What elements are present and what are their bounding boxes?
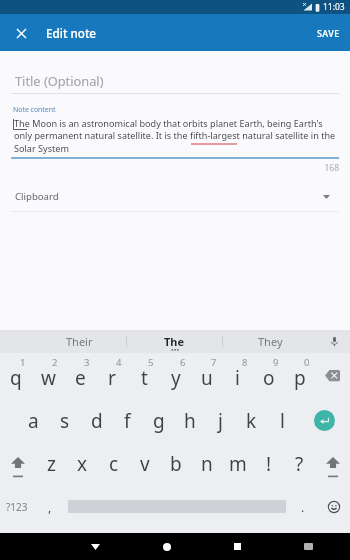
button[interactable]: Enter xyxy=(298,399,350,442)
staticText: Clipboard xyxy=(15,190,59,203)
button[interactable]: w xyxy=(32,357,64,399)
staticText: i xyxy=(235,365,240,391)
staticText: Edit note xyxy=(46,25,97,41)
staticText: Their xyxy=(66,334,93,349)
staticText: 5 xyxy=(148,356,154,369)
staticText: 1 xyxy=(20,356,26,369)
staticText: t xyxy=(141,365,148,391)
staticText: v xyxy=(140,451,150,477)
button[interactable]: Home xyxy=(131,533,202,560)
staticText: f xyxy=(124,408,131,434)
staticText: 7 xyxy=(211,356,217,369)
staticText: ? xyxy=(295,451,304,477)
button[interactable]: a xyxy=(17,399,49,442)
button[interactable]: z xyxy=(36,442,67,485)
staticText: o xyxy=(263,365,275,391)
button[interactable]: , xyxy=(34,485,66,528)
staticText: . xyxy=(301,499,305,515)
button[interactable]: x xyxy=(67,442,98,485)
button[interactable]: Emoji xyxy=(318,485,350,528)
button[interactable]: g xyxy=(143,399,174,442)
staticText: The xyxy=(164,334,185,349)
button[interactable]: Shift xyxy=(0,442,36,485)
staticText: p xyxy=(294,365,306,391)
button[interactable]: b xyxy=(160,442,191,485)
staticText: The Moon is an astronomical body that or… xyxy=(14,117,338,155)
button[interactable]: . xyxy=(288,485,318,528)
staticText: g xyxy=(153,408,165,434)
staticText: 168 xyxy=(0,162,339,174)
staticText: j xyxy=(218,408,223,434)
button[interactable]: Their xyxy=(32,330,126,353)
staticText: m xyxy=(229,451,247,477)
button[interactable]: Close xyxy=(9,21,33,45)
button[interactable]: Recents xyxy=(202,533,273,560)
button[interactable]: Voice input xyxy=(318,330,350,353)
staticText: 4 xyxy=(116,356,122,369)
button[interactable]: SAVE xyxy=(307,19,350,47)
staticText: Note content xyxy=(13,105,56,114)
staticText: s xyxy=(60,408,70,434)
staticText: d xyxy=(91,408,103,434)
button[interactable]: j xyxy=(205,399,236,442)
staticText: l xyxy=(280,408,285,434)
button[interactable]: i xyxy=(222,357,253,399)
staticText: c xyxy=(109,451,119,477)
button[interactable]: Clipboard xyxy=(0,182,350,211)
staticText: , xyxy=(48,499,52,515)
staticText: 3 xyxy=(84,356,90,369)
staticText: ?123 xyxy=(6,500,28,514)
staticText: n xyxy=(201,451,213,477)
button[interactable]: c xyxy=(98,442,129,485)
staticText: 0 xyxy=(304,356,310,369)
button[interactable]: f xyxy=(112,399,143,442)
button[interactable]: n xyxy=(191,442,222,485)
button[interactable]: ? xyxy=(284,442,315,485)
staticText: r xyxy=(108,365,116,391)
staticText: w xyxy=(41,365,56,391)
button[interactable]: q xyxy=(0,357,32,399)
staticText: k xyxy=(246,408,257,434)
button[interactable]: l xyxy=(267,399,298,442)
button[interactable]: s xyxy=(49,399,81,442)
staticText: They xyxy=(258,334,283,349)
staticText: Title (Optional) xyxy=(15,72,104,89)
staticText: ! xyxy=(266,451,272,477)
button[interactable]: Switch keyboard xyxy=(273,533,344,560)
button[interactable]: k xyxy=(236,399,267,442)
staticText: b xyxy=(170,451,182,477)
staticText: u xyxy=(201,365,213,391)
button[interactable]: d xyxy=(81,399,112,442)
button[interactable]: Back xyxy=(60,533,131,560)
staticText: x xyxy=(77,451,88,477)
button[interactable]: e xyxy=(64,357,96,399)
staticText: q xyxy=(10,365,22,391)
button[interactable]: They xyxy=(223,330,318,353)
button[interactable]: h xyxy=(174,399,205,442)
staticText: e xyxy=(75,365,86,391)
button[interactable]: Shift xyxy=(315,442,350,485)
button[interactable]: v xyxy=(129,442,160,485)
button[interactable]: The xyxy=(127,330,222,353)
button[interactable]: ?123 xyxy=(0,485,34,528)
staticText: 6 xyxy=(180,356,186,369)
staticText: SAVE xyxy=(317,27,340,39)
button[interactable]: p xyxy=(284,357,315,399)
staticText: z xyxy=(47,451,56,477)
staticText: 2 xyxy=(52,356,58,369)
staticText: h xyxy=(184,408,196,434)
staticText: 9 xyxy=(273,356,279,369)
button[interactable]: Space xyxy=(66,485,288,528)
button[interactable]: t xyxy=(128,357,160,399)
button[interactable]: m xyxy=(222,442,253,485)
staticText: 8 xyxy=(242,356,248,369)
button[interactable]: Backspace xyxy=(315,357,350,399)
button[interactable]: o xyxy=(253,357,284,399)
button[interactable]: y xyxy=(160,357,191,399)
button[interactable]: r xyxy=(96,357,128,399)
staticText: a xyxy=(28,408,39,434)
staticText: 11:03 xyxy=(323,1,345,13)
button[interactable]: u xyxy=(191,357,222,399)
staticText: y xyxy=(171,365,181,391)
button[interactable]: ! xyxy=(253,442,284,485)
